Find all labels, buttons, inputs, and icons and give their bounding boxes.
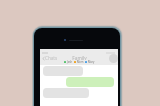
staticText: Family [72, 55, 87, 60]
button[interactable]: Josh [64, 60, 73, 64]
staticText: Chats [45, 55, 58, 61]
staticText: Mary [88, 60, 95, 64]
button[interactable]: Chats [42, 55, 58, 61]
button[interactable]: Mom [74, 60, 84, 64]
staticText: Josh [67, 60, 73, 64]
button[interactable]: Mary [85, 60, 95, 64]
button[interactable]: Group profile [109, 54, 118, 63]
staticText: Mom [77, 60, 84, 64]
